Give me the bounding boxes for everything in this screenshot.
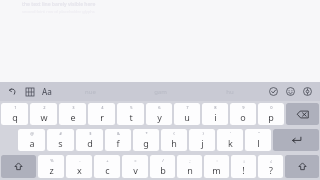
button[interactable]: Settings: [299, 83, 316, 100]
staticText: t: [129, 111, 133, 123]
staticText: $: [89, 131, 92, 136]
button[interactable]: 9: [230, 103, 256, 125]
staticText: e: [70, 111, 76, 123]
staticText: 3: [72, 105, 75, 110]
staticText: *: [145, 131, 148, 136]
button[interactable]: 7: [174, 103, 200, 125]
button[interactable]: @: [18, 129, 45, 151]
staticText: ): [202, 131, 204, 136]
staticText: #: [59, 131, 62, 136]
staticText: h: [171, 137, 177, 149]
button[interactable]: ¡: [231, 155, 256, 178]
button[interactable]: Format text: [38, 83, 55, 100]
button[interactable]: 2: [30, 103, 57, 125]
staticText: ;: [189, 158, 191, 163]
staticText: d: [87, 137, 93, 149]
button[interactable]: 3: [59, 103, 86, 125]
staticText: &: [117, 131, 120, 136]
staticText: g: [143, 137, 149, 149]
staticText: Aa: [42, 86, 52, 97]
staticText: %: [50, 158, 54, 163]
staticText: s: [58, 137, 63, 149]
staticText: -: [79, 158, 81, 163]
staticText: !: [242, 164, 245, 176]
staticText: 0: [270, 105, 273, 110]
staticText: f: [116, 137, 120, 149]
button[interactable]: (: [161, 129, 187, 151]
button[interactable]: ¿: [258, 155, 283, 178]
staticText: n: [187, 164, 193, 176]
staticText: j: [201, 137, 204, 149]
staticText: w: [40, 111, 48, 123]
staticText: +: [106, 158, 109, 163]
staticText: 7: [186, 105, 189, 110]
staticText: 4: [101, 105, 104, 110]
staticText: ': [230, 131, 231, 136]
button[interactable]: 8: [202, 103, 228, 125]
staticText: p: [268, 111, 274, 123]
button[interactable]: ;: [177, 155, 202, 178]
staticText: 8: [214, 105, 217, 110]
staticText: z: [49, 164, 54, 176]
button[interactable]: 4: [88, 103, 115, 125]
button[interactable]: 0: [258, 103, 284, 125]
staticText: (: [173, 131, 175, 136]
button[interactable]: Table: [21, 83, 38, 100]
button[interactable]: +: [94, 155, 120, 178]
staticText: gam: [154, 88, 167, 96]
staticText: i: [214, 111, 217, 123]
button[interactable]: Shift: [1, 155, 36, 178]
button[interactable]: Shift: [285, 155, 319, 178]
button[interactable]: 5: [117, 103, 144, 125]
staticText: 9: [242, 105, 245, 110]
button[interactable]: %: [38, 155, 64, 178]
staticText: ¡: [243, 158, 245, 163]
button[interactable]: *: [133, 129, 159, 151]
staticText: o: [240, 111, 246, 123]
staticText: :: [216, 158, 218, 163]
staticText: @: [30, 131, 34, 136]
button[interactable]: ": [245, 129, 271, 151]
staticText: m: [212, 164, 221, 176]
staticText: q: [12, 111, 18, 123]
button[interactable]: Undo: [4, 83, 21, 100]
staticText: /: [162, 158, 164, 163]
staticText: hu: [226, 88, 234, 96]
button[interactable]: /: [150, 155, 175, 178]
staticText: c: [105, 164, 110, 176]
button[interactable]: Check: [265, 83, 282, 100]
button[interactable]: 1: [1, 103, 28, 125]
button[interactable]: Emoji: [282, 83, 299, 100]
button[interactable]: 6: [146, 103, 172, 125]
button[interactable]: #: [47, 129, 74, 151]
staticText: 2: [43, 105, 46, 110]
button[interactable]: $: [76, 129, 103, 151]
button[interactable]: ': [217, 129, 243, 151]
staticText: x: [77, 164, 82, 176]
staticText: ": [258, 131, 260, 136]
staticText: l: [257, 137, 260, 149]
staticText: a: [29, 137, 35, 149]
staticText: k: [228, 137, 233, 149]
staticText: b: [160, 164, 166, 176]
staticText: y: [157, 111, 162, 123]
button[interactable]: -: [66, 155, 92, 178]
staticText: ?: [269, 164, 273, 176]
button[interactable]: Backspace: [286, 103, 319, 125]
button[interactable]: :: [204, 155, 229, 178]
button[interactable]: &: [105, 129, 131, 151]
button[interactable]: =: [122, 155, 148, 178]
staticText: u: [184, 111, 190, 123]
staticText: 5: [130, 105, 133, 110]
button[interactable]: ): [189, 129, 215, 151]
staticText: v: [133, 164, 138, 176]
staticText: 1: [14, 105, 17, 110]
staticText: 6: [158, 105, 161, 110]
staticText: nue: [85, 88, 96, 96]
staticText: r: [100, 111, 104, 123]
button[interactable]: Enter: [273, 129, 319, 151]
